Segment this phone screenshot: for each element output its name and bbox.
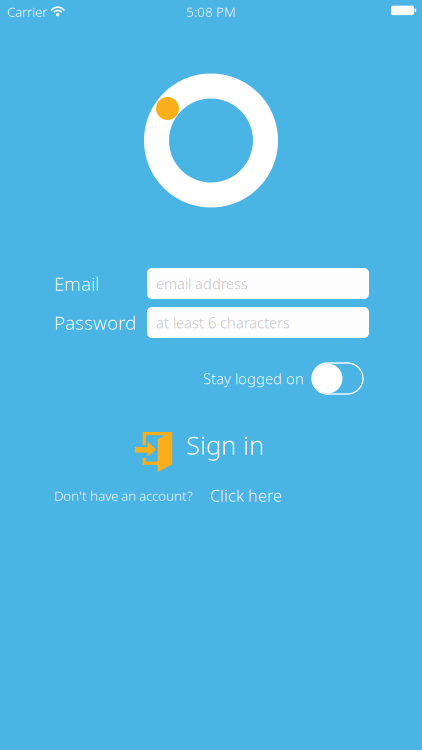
staticText: Don't have an account? [54, 487, 193, 504]
button[interactable]: Click here [193, 485, 282, 506]
staticText: Sign in [186, 428, 264, 462]
staticText: Stay logged on [203, 369, 304, 388]
staticText: Password [54, 310, 136, 335]
button[interactable]: email address [147, 268, 369, 299]
button[interactable]: Sign in [0, 432, 414, 472]
staticText: Email [54, 271, 99, 296]
button[interactable]: at least 6 characters [147, 307, 369, 338]
staticText: 5:08 PM [186, 3, 236, 20]
button[interactable]: Stay logged on [312, 363, 363, 394]
staticText: email address [156, 274, 248, 293]
staticText: Carrier [7, 3, 47, 20]
staticText: Click here [210, 485, 282, 506]
staticText: at least 6 characters [156, 313, 290, 332]
